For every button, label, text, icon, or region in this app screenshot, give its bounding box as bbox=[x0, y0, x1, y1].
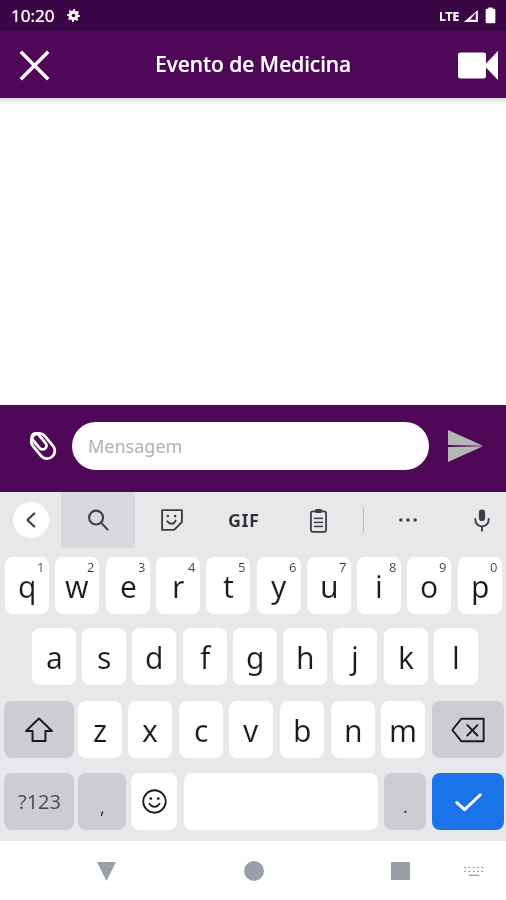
staticText: n bbox=[344, 710, 363, 751]
staticText: h bbox=[296, 637, 315, 678]
button[interactable]: i bbox=[357, 557, 401, 614]
button[interactable]: x bbox=[128, 701, 172, 758]
staticText: 6 bbox=[289, 558, 297, 576]
button[interactable]: k bbox=[384, 628, 428, 685]
staticText: 10:20 bbox=[11, 4, 55, 27]
button[interactable]: Back bbox=[13, 502, 49, 538]
staticText: Evento de Medicina bbox=[155, 50, 352, 79]
button[interactable]: p bbox=[458, 557, 502, 614]
staticText: 7 bbox=[339, 558, 347, 576]
staticText: j bbox=[351, 637, 359, 678]
button[interactable]: h bbox=[283, 628, 327, 685]
button[interactable]: Search bbox=[61, 492, 135, 548]
staticText: z bbox=[93, 710, 108, 751]
button[interactable]: o bbox=[407, 557, 451, 614]
button[interactable]: Stickers bbox=[150, 498, 194, 542]
staticText: , bbox=[100, 795, 105, 820]
staticText: 5 bbox=[238, 558, 246, 576]
staticText: ?123 bbox=[18, 788, 61, 815]
button[interactable]: b bbox=[280, 701, 324, 758]
button[interactable]: Shift bbox=[4, 701, 74, 758]
button[interactable]: v bbox=[229, 701, 273, 758]
staticText: Mensagem bbox=[88, 434, 183, 459]
staticText: s bbox=[97, 637, 112, 678]
staticText: p bbox=[471, 566, 490, 607]
button[interactable]: n bbox=[331, 701, 375, 758]
staticText: x bbox=[142, 710, 158, 751]
button[interactable]: m bbox=[381, 701, 425, 758]
staticText: c bbox=[194, 710, 209, 751]
button[interactable]: e bbox=[106, 557, 150, 614]
button[interactable]: Home bbox=[232, 849, 276, 893]
button[interactable]: w bbox=[55, 557, 99, 614]
button[interactable]: u bbox=[307, 557, 351, 614]
button[interactable]: Send bbox=[432, 773, 504, 830]
staticText: LTE bbox=[439, 8, 460, 24]
button[interactable]: GIF bbox=[222, 498, 266, 542]
staticText: . bbox=[403, 794, 408, 819]
button[interactable]: Mensagem bbox=[72, 422, 429, 470]
button[interactable]: Back bbox=[84, 849, 128, 893]
staticText: w bbox=[65, 566, 89, 607]
staticText: d bbox=[145, 637, 164, 678]
staticText: o bbox=[420, 566, 439, 607]
button[interactable]: Change keyboard bbox=[452, 849, 496, 893]
button[interactable]: d bbox=[132, 628, 176, 685]
staticText: 3 bbox=[138, 558, 146, 576]
staticText: r bbox=[172, 566, 185, 607]
staticText: m bbox=[389, 710, 418, 751]
staticText: f bbox=[200, 637, 211, 678]
staticText: b bbox=[293, 710, 312, 751]
staticText: g bbox=[246, 637, 265, 678]
button[interactable]: Video call bbox=[454, 41, 502, 89]
staticText: k bbox=[398, 637, 415, 678]
staticText: t bbox=[223, 566, 234, 607]
staticText: 1 bbox=[37, 558, 45, 576]
button[interactable]: Voice input bbox=[460, 498, 504, 542]
staticText: i bbox=[375, 566, 383, 607]
button[interactable]: r bbox=[156, 557, 200, 614]
button[interactable]: Recents bbox=[378, 849, 422, 893]
button[interactable]: , bbox=[78, 773, 126, 830]
button[interactable]: f bbox=[183, 628, 227, 685]
button[interactable]: Emoji bbox=[131, 773, 177, 830]
button[interactable]: More options bbox=[386, 498, 430, 542]
button[interactable]: z bbox=[78, 701, 122, 758]
button[interactable]: j bbox=[333, 628, 377, 685]
staticText: 0 bbox=[490, 558, 498, 576]
button[interactable]: l bbox=[434, 628, 478, 685]
button[interactable]: t bbox=[206, 557, 250, 614]
staticText: q bbox=[18, 566, 37, 607]
staticText: v bbox=[243, 710, 259, 751]
button[interactable]: ?123 bbox=[4, 773, 74, 830]
staticText: u bbox=[320, 566, 339, 607]
button[interactable]: s bbox=[82, 628, 126, 685]
staticText: e bbox=[120, 566, 137, 607]
staticText: GIF bbox=[228, 508, 260, 533]
staticText: 9 bbox=[439, 558, 447, 576]
button[interactable]: . bbox=[384, 773, 426, 830]
button[interactable]: g bbox=[233, 628, 277, 685]
button[interactable]: a bbox=[32, 628, 76, 685]
button[interactable]: Clipboard bbox=[296, 498, 340, 542]
button[interactable]: c bbox=[179, 701, 223, 758]
button[interactable]: q bbox=[5, 557, 49, 614]
staticText: a bbox=[46, 637, 63, 678]
button[interactable]: Backspace bbox=[432, 701, 504, 758]
staticText: 4 bbox=[188, 558, 196, 576]
staticText: 2 bbox=[87, 558, 95, 576]
button[interactable]: Send bbox=[443, 424, 487, 468]
staticText: 8 bbox=[389, 558, 397, 576]
button[interactable]: Attach file bbox=[20, 423, 66, 469]
staticText: y bbox=[271, 566, 287, 607]
button[interactable]: Close bbox=[10, 41, 58, 89]
button[interactable]: y bbox=[257, 557, 301, 614]
staticText: l bbox=[452, 637, 460, 678]
